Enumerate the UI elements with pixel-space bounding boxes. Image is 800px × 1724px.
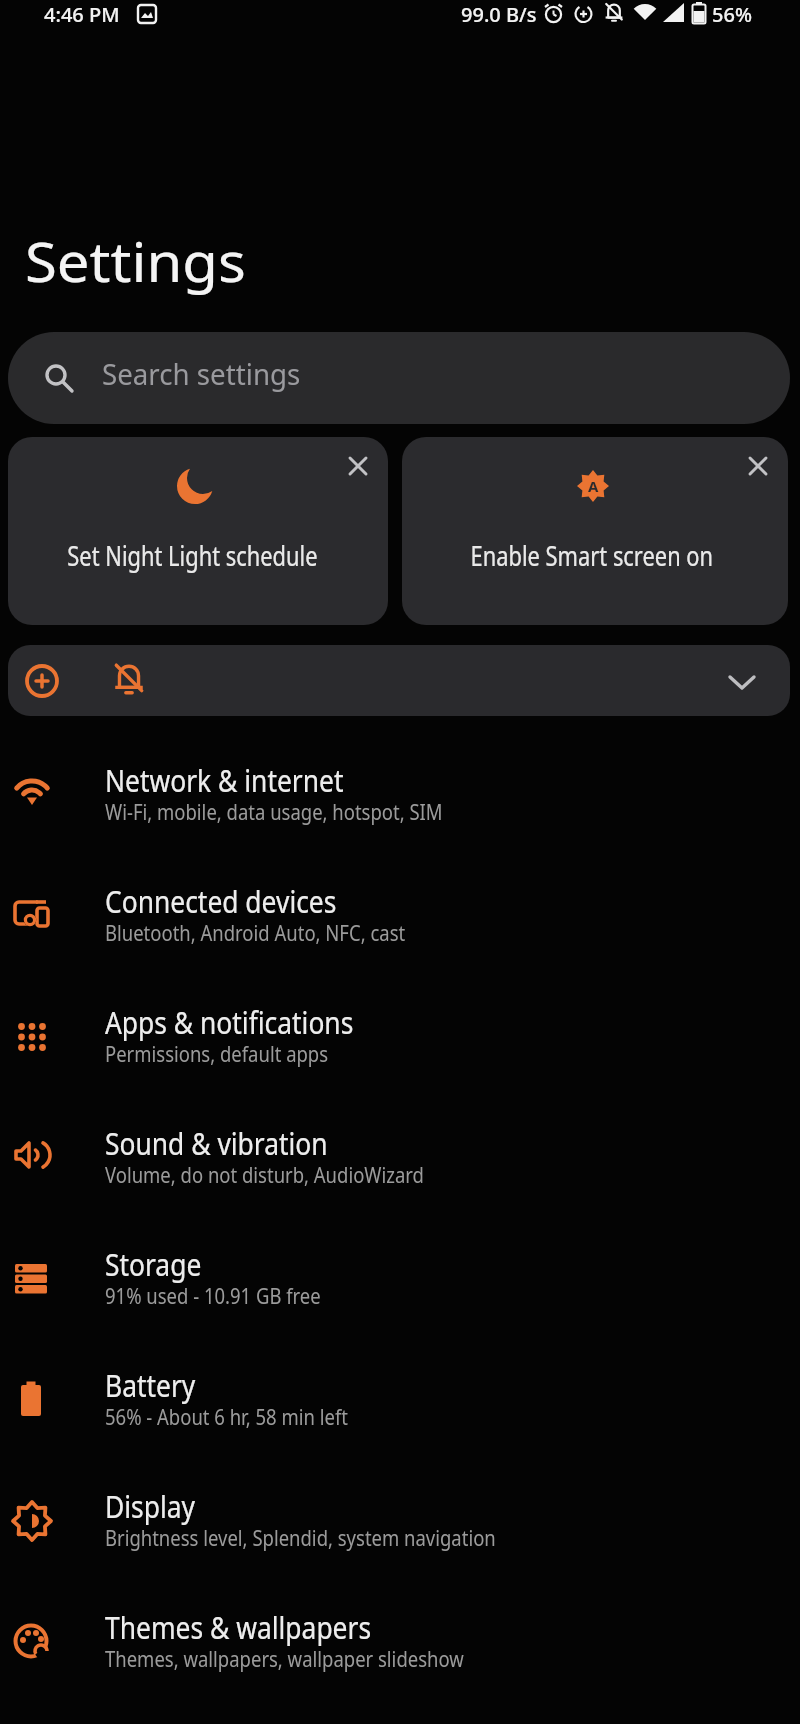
staticText: Set Night Light schedule — [67, 537, 318, 574]
staticText: Brightness level, Splendid, system navig… — [105, 1524, 497, 1553]
staticText: 4:46 PM — [44, 1, 120, 28]
button[interactable]: Sound & vibration — [0, 1098, 800, 1219]
staticText: Search settings — [102, 354, 301, 393]
staticText: Wi-Fi, mobile, data usage, hotspot, SIM — [105, 798, 443, 827]
button[interactable]: Themes & wallpapers — [0, 1582, 800, 1703]
button[interactable]: Connected devices — [0, 856, 800, 977]
staticText: Apps & notifications — [105, 1002, 354, 1043]
button[interactable]: Network & internet — [0, 735, 800, 856]
staticText: 56% - About 6 hr, 58 min left — [105, 1403, 349, 1432]
button[interactable]: Battery — [0, 1340, 800, 1461]
button[interactable] — [719, 666, 765, 700]
button[interactable]: Search settings — [8, 332, 790, 424]
staticText: A — [588, 476, 599, 496]
button[interactable] — [349, 457, 367, 475]
staticText: Enable Smart screen on — [470, 537, 713, 574]
button[interactable]: Set Night Light schedule — [8, 437, 388, 625]
staticText: Storage — [105, 1244, 202, 1285]
button[interactable] — [749, 457, 767, 475]
button[interactable] — [8, 645, 790, 716]
staticText: Sound & vibration — [105, 1123, 328, 1164]
staticText: Connected devices — [105, 881, 336, 922]
staticText: Display — [105, 1486, 196, 1527]
staticText: Bluetooth, Android Auto, NFC, cast — [105, 919, 406, 948]
staticText: 99.0 B/s — [461, 1, 537, 28]
button[interactable]: Apps & notifications — [0, 977, 800, 1098]
staticText: Settings — [25, 224, 246, 298]
staticText: 91% used - 10.91 GB free — [105, 1282, 321, 1311]
button[interactable]: A — [402, 437, 788, 625]
button[interactable]: Display — [0, 1461, 800, 1582]
staticText: Network & internet — [105, 760, 343, 801]
staticText: Volume, do not disturb, AudioWizard — [105, 1161, 424, 1190]
staticText: Themes & wallpapers — [105, 1607, 372, 1648]
staticText: Themes, wallpapers, wallpaper slideshow — [105, 1645, 464, 1674]
staticText: Battery — [105, 1365, 196, 1406]
button[interactable]: Storage — [0, 1219, 800, 1340]
staticText: Permissions, default apps — [105, 1040, 328, 1069]
staticText: 56% — [712, 1, 752, 28]
